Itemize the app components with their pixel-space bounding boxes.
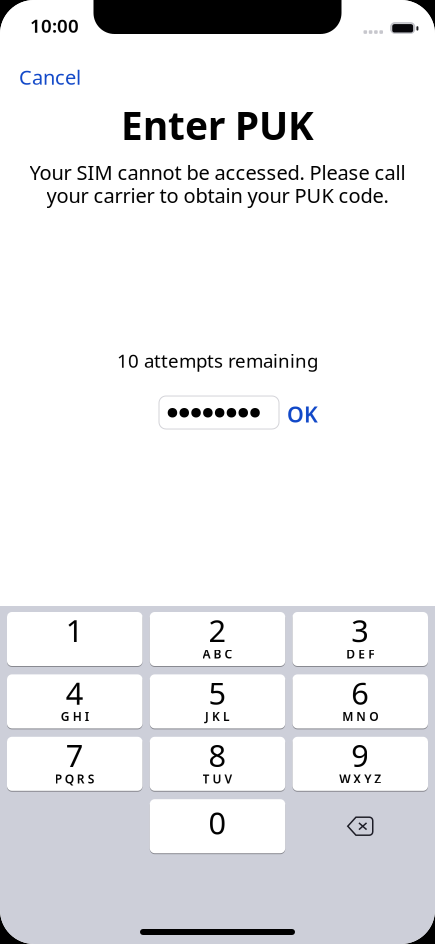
- button[interactable]: 8: [150, 737, 285, 791]
- staticText: OK: [287, 400, 318, 428]
- staticText: 9: [351, 735, 369, 775]
- staticText: 8: [208, 735, 226, 775]
- button[interactable]: 4: [7, 674, 142, 728]
- staticText: D E F: [346, 646, 374, 662]
- staticText: 4: [66, 672, 84, 713]
- button[interactable]: 9: [292, 737, 428, 791]
- button[interactable]: 2: [150, 612, 285, 666]
- staticText: J K L: [205, 708, 230, 724]
- button[interactable]: Delete: [292, 799, 428, 853]
- staticText: 2: [208, 610, 226, 651]
- staticText: 1: [66, 610, 84, 651]
- staticText: A B C: [202, 646, 232, 662]
- staticText: 10:00: [30, 13, 79, 38]
- staticText: your carrier to obtain your PUK code.: [46, 182, 388, 209]
- staticText: Enter PUK: [121, 99, 314, 151]
- staticText: T U V: [202, 771, 232, 787]
- button[interactable]: Cancel: [0, 56, 100, 98]
- button[interactable]: 6: [292, 674, 428, 728]
- button[interactable]: 3: [292, 612, 428, 666]
- staticText: Cancel: [19, 64, 81, 90]
- staticText: 3: [351, 610, 369, 651]
- staticText: W X Y Z: [339, 771, 381, 787]
- button[interactable]: OK: [278, 393, 327, 435]
- staticText: G H I: [61, 708, 89, 724]
- staticText: 10 attempts remaining: [117, 348, 318, 373]
- staticText: Your SIM cannot be accessed. Please call: [29, 159, 405, 186]
- button[interactable]: 7: [7, 737, 142, 791]
- staticText: 7: [66, 735, 84, 775]
- button[interactable]: 0: [150, 799, 285, 853]
- staticText: 0: [208, 802, 226, 843]
- staticText: M N O: [342, 708, 378, 724]
- staticText: 5: [208, 672, 226, 713]
- staticText: 6: [351, 672, 369, 713]
- button[interactable]: 1: [7, 612, 142, 666]
- staticText: P Q R S: [55, 771, 95, 787]
- button[interactable]: 5: [150, 674, 285, 728]
